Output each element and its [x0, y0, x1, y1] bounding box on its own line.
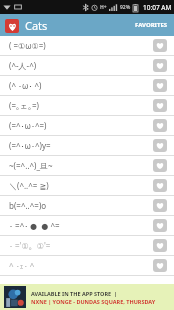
button[interactable]: Add to favorites [153, 159, 167, 172]
button[interactable]: FAVORITES [129, 14, 174, 36]
staticText: 10:07 AM [143, 3, 172, 12]
staticText: (=^･ω･^)y= [9, 140, 153, 151]
button[interactable]: Add to favorites [153, 59, 167, 72]
button[interactable]: Add to favorites [153, 219, 167, 232]
button[interactable]: Add to favorites [153, 199, 167, 212]
staticText: Cats [25, 18, 48, 33]
staticText: (^-人-^) [9, 60, 153, 71]
button[interactable]: ( =①ω①=) [0, 36, 174, 55]
button[interactable]: App icon [5, 19, 19, 33]
staticText: ＼(^..^= ≧) [9, 180, 153, 191]
button[interactable]: ^ ･ｪ･ ^ [0, 256, 174, 275]
button[interactable]: (=^･ω･^)y= [0, 136, 174, 155]
button[interactable]: (^-人-^) [0, 56, 174, 75]
staticText: AVAILABLE IN THE APP STORE | #MAKEITORIG… [31, 290, 170, 297]
button[interactable]: ･ =^･ ● ● ^= [0, 216, 174, 235]
staticText: (=｡ェ｡=) [9, 100, 153, 111]
button[interactable]: Add to favorites [153, 119, 167, 132]
button[interactable]: (=｡ェ｡=) [0, 96, 174, 115]
button[interactable]: (^ ･ω･ ^) [0, 76, 174, 95]
button[interactable]: Add to favorites [153, 259, 167, 272]
staticText: (^ ･ω･ ^) [9, 80, 153, 91]
button[interactable]: Advertisement [0, 284, 174, 310]
staticText: b(=^..^=)o [9, 200, 153, 211]
staticText: ^ ･ｪ･ ^ [9, 260, 153, 271]
staticText: H+ [100, 4, 107, 11]
button[interactable]: ･ ='①｡ ①'= [0, 236, 174, 255]
button[interactable]: Add to favorites [153, 39, 167, 52]
staticText: FAVORITES [135, 21, 168, 29]
button[interactable]: Add to favorites [153, 79, 167, 92]
staticText: ･ =^･ ● ● ^= [9, 220, 153, 231]
button[interactable]: Add to favorites [153, 139, 167, 152]
button[interactable]: ＼(^..^= ≧) [0, 176, 174, 195]
staticText: 92% [120, 4, 131, 11]
staticText: ~(=^‥^)_旦~ [9, 160, 153, 171]
button[interactable]: ~(=^‥^)_旦~ [0, 156, 174, 175]
button[interactable]: (=^･ω･^=) [0, 116, 174, 135]
button[interactable]: Add to favorites [153, 239, 167, 252]
button[interactable]: Add to favorites [153, 99, 167, 112]
staticText: NXNE | YONGE - DUNDAS SQUARE, THURSDAY J… [31, 298, 170, 305]
button[interactable]: Add to favorites [153, 179, 167, 192]
staticText: (=^･ω･^=) [9, 120, 153, 131]
staticText: ( =①ω①=) [9, 40, 153, 51]
staticText: ･ ='①｡ ①'= [9, 240, 153, 251]
button[interactable]: b(=^..^=)o [0, 196, 174, 215]
